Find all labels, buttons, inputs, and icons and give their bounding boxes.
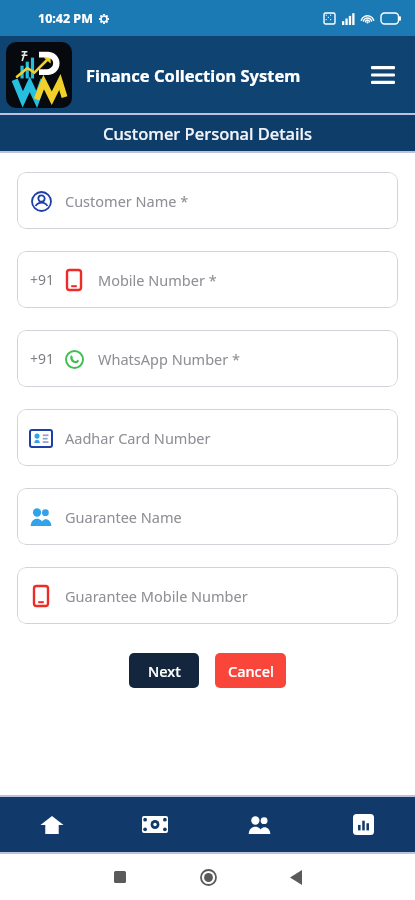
staticText: Finance Collection System: [86, 64, 301, 86]
button[interactable]: Home: [164, 854, 252, 900]
button[interactable]: Reports: [311, 797, 415, 852]
button[interactable]: Collections: [103, 797, 207, 852]
button[interactable]: Menu: [363, 55, 403, 95]
staticText: Customer Name *: [65, 191, 189, 211]
staticText: WhatsApp Number *: [98, 349, 241, 369]
staticText: Customer Personal Details: [103, 122, 312, 144]
button[interactable]: Next: [129, 653, 199, 688]
staticText: Cancel: [228, 661, 274, 681]
staticText: Guarantee Mobile Number: [65, 586, 248, 606]
button[interactable]: Aadhar Card Number: [17, 409, 398, 466]
button[interactable]: Recents: [76, 854, 164, 900]
staticText: +91: [30, 270, 55, 289]
staticText: Guarantee Name: [65, 507, 182, 527]
staticText: Mobile Number *: [98, 270, 217, 290]
staticText: 10:42 PM: [38, 10, 93, 27]
button[interactable]: +91: [17, 330, 398, 387]
staticText: Aadhar Card Number: [65, 428, 211, 448]
button[interactable]: +91: [17, 251, 398, 308]
button[interactable]: Guarantee Name: [17, 488, 398, 545]
staticText: Next: [148, 661, 181, 681]
button[interactable]: Guarantee Mobile Number: [17, 567, 398, 624]
button[interactable]: Customers: [207, 797, 311, 852]
button[interactable]: Back: [252, 854, 340, 900]
button[interactable]: Home: [0, 797, 103, 852]
button[interactable]: Customer Name *: [17, 172, 398, 229]
staticText: +91: [30, 349, 55, 368]
button[interactable]: Cancel: [215, 653, 286, 688]
